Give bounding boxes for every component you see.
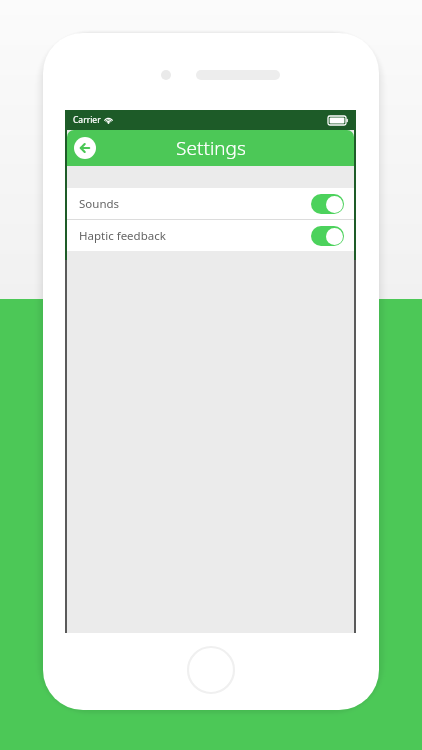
staticText: Sounds — [79, 196, 120, 212]
staticText: Carrier — [73, 114, 101, 126]
button[interactable]: Toggle on — [311, 194, 344, 214]
staticText: Settings — [176, 135, 246, 161]
staticText: Haptic feedback — [79, 228, 166, 244]
button[interactable]: Haptic feedback — [67, 220, 354, 251]
button[interactable]: Back — [74, 137, 96, 159]
button[interactable]: Toggle on — [311, 226, 344, 246]
button[interactable]: Sounds — [67, 188, 354, 219]
